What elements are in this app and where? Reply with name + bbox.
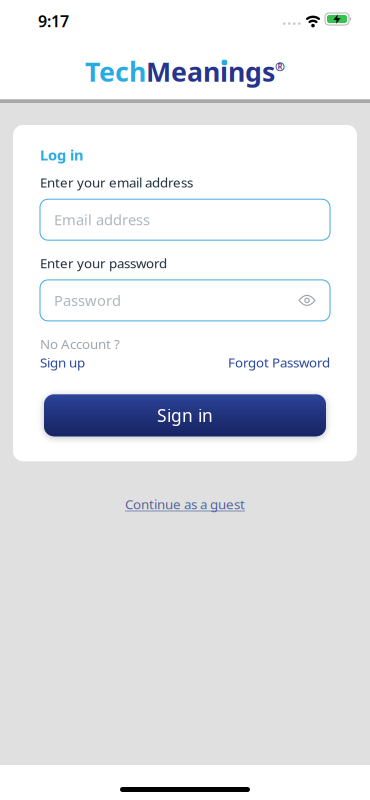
- staticText: Continue as a guest: [125, 495, 245, 513]
- staticText: Password: [54, 291, 121, 310]
- button[interactable]: Continue as a guest: [125, 495, 245, 513]
- button[interactable]: Sign in: [40, 394, 330, 436]
- button[interactable]: Forgot Password: [228, 354, 330, 371]
- staticText: Sign up: [40, 354, 85, 371]
- button[interactable]: Email address: [40, 199, 330, 240]
- staticText: Sign in: [157, 404, 213, 427]
- staticText: No Account ?: [40, 335, 120, 353]
- button[interactable]: Password: [40, 280, 330, 321]
- staticText: Log in: [40, 145, 84, 164]
- staticText: 9:17: [38, 10, 69, 32]
- staticText: Tech: [85, 54, 146, 89]
- staticText: Email address: [54, 210, 150, 229]
- staticText: Enter your password: [40, 254, 167, 272]
- staticText: Enter your email address: [40, 173, 193, 191]
- staticText: Forgot Password: [228, 354, 330, 371]
- button[interactable]: Sign up: [40, 354, 85, 371]
- staticText: Meanings®: [146, 54, 285, 89]
